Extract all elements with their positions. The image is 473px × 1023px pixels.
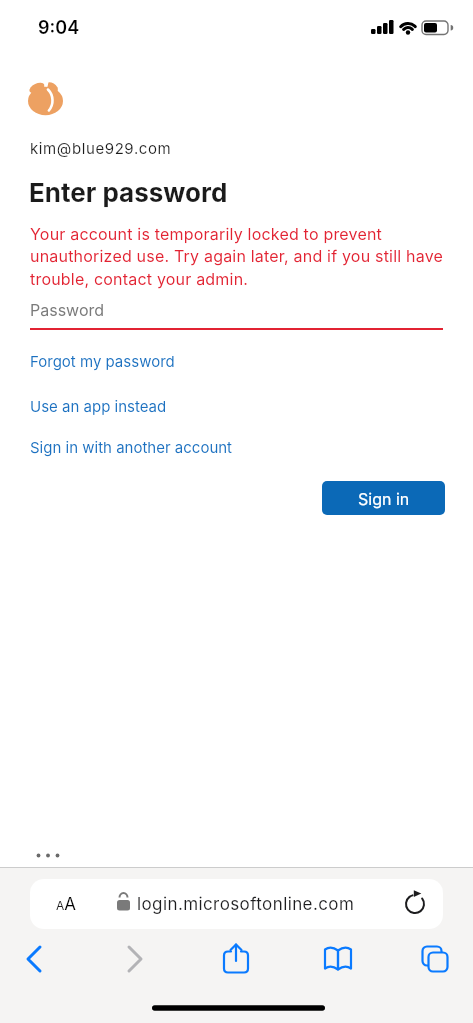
staticText: 9:04 (38, 17, 80, 39)
button[interactable] (115, 940, 155, 978)
staticText: Sign in with another account (30, 438, 233, 456)
staticText: kim@blue929.com (30, 139, 172, 157)
staticText: AA (56, 894, 77, 915)
staticText: Sign in (358, 489, 410, 508)
button[interactable]: Use an app instead (30, 393, 167, 419)
button[interactable] (414, 940, 454, 978)
staticText: Use an app instead (30, 397, 167, 415)
button[interactable] (396, 885, 434, 923)
staticText: Your account is temporarily locked to pr… (30, 224, 444, 289)
button[interactable] (14, 940, 54, 978)
staticText: login.microsoftonline.com (137, 894, 355, 915)
button[interactable]: Sign in (322, 481, 445, 515)
staticText: Forgot my password (30, 352, 175, 370)
button[interactable] (318, 940, 358, 978)
button[interactable] (48, 885, 86, 923)
button[interactable] (28, 845, 68, 867)
staticText: Password (30, 300, 105, 319)
button[interactable]: Forgot my password (30, 348, 175, 374)
button[interactable]: Sign in with another account (30, 434, 233, 460)
button[interactable] (216, 940, 256, 978)
staticText: Enter password (29, 177, 228, 208)
button[interactable]: AA (30, 879, 443, 929)
